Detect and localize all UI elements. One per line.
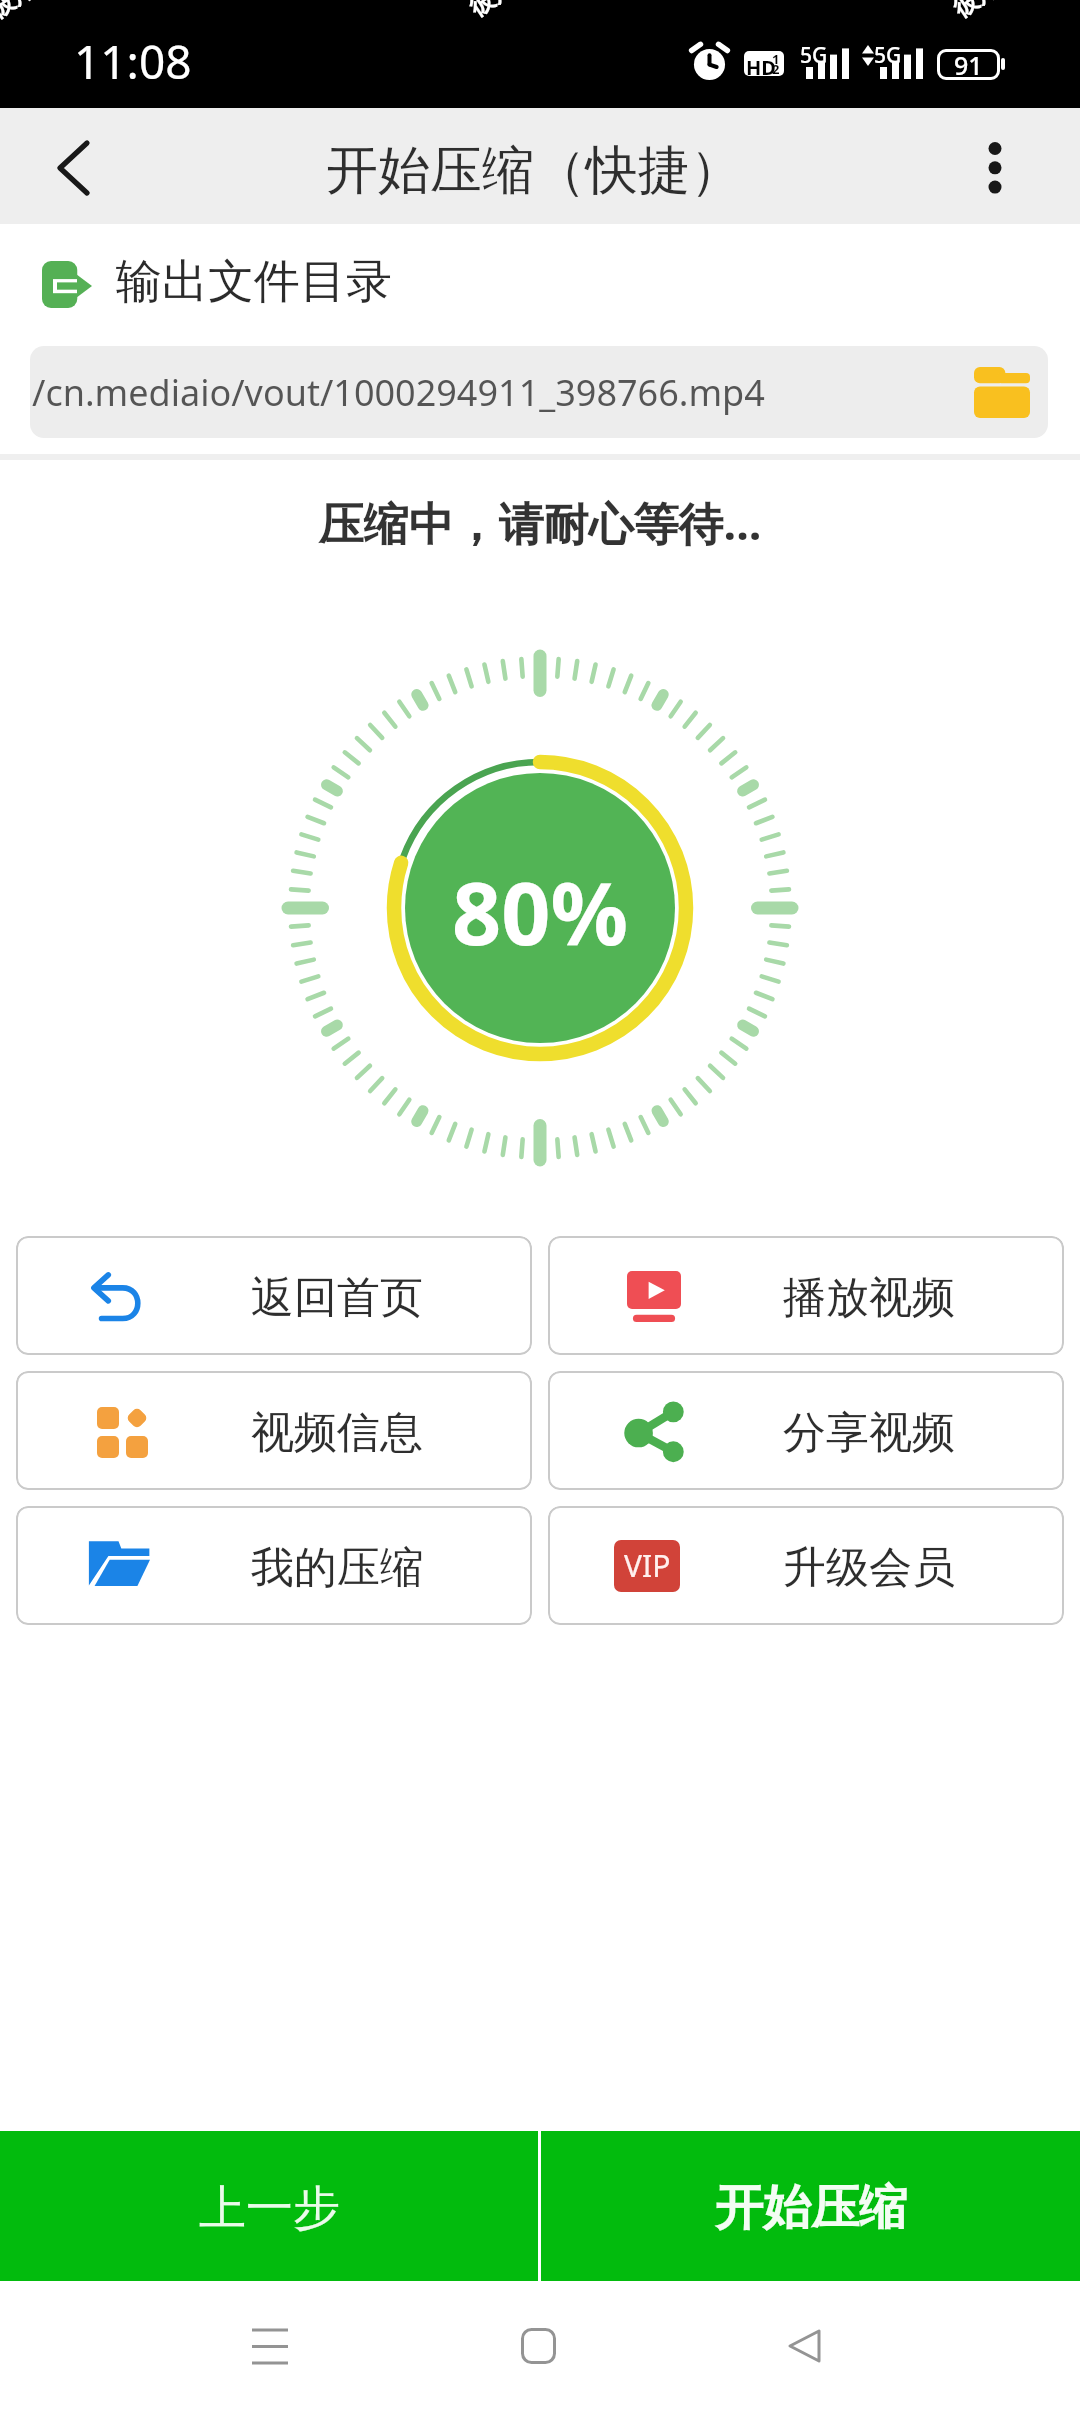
button[interactable]: 播放视频: [548, 1236, 1064, 1355]
button[interactable]: More options: [950, 108, 1080, 224]
button[interactable]: Back: [714, 2291, 894, 2401]
staticText: 5G: [800, 41, 828, 70]
staticText: 彼岸: [0, 0, 40, 25]
staticText: 输出文件目录: [116, 253, 392, 311]
staticText: 5G: [874, 41, 902, 70]
staticText: HD: [746, 54, 776, 76]
button[interactable]: VIP: [548, 1506, 1064, 1625]
staticText: 视频信息: [251, 1406, 423, 1460]
button[interactable]: 上一步: [0, 2131, 538, 2281]
button[interactable]: 视频信息: [16, 1371, 532, 1490]
staticText: 彼岸: [464, 0, 520, 23]
staticText: 91: [954, 48, 983, 79]
button[interactable]: Back: [0, 108, 150, 224]
staticText: 彼岸: [948, 0, 1004, 24]
staticText: 上一步: [199, 2179, 340, 2238]
button[interactable]: 开始压缩: [541, 2131, 1080, 2281]
button[interactable]: Choose output folder: [955, 346, 1048, 438]
staticText: VIP: [624, 1545, 671, 1586]
staticText: 播放视频: [783, 1271, 955, 1325]
button[interactable]: 我的压缩: [16, 1506, 532, 1625]
staticText: 1: [772, 51, 780, 68]
button[interactable]: 返回首页: [16, 1236, 532, 1355]
staticText: 我的压缩: [251, 1541, 423, 1595]
staticText: 开始压缩（快捷）: [326, 138, 742, 204]
staticText: 分享视频: [783, 1406, 955, 1460]
staticText: 开始压缩: [715, 2178, 907, 2238]
staticText: 升级会员: [783, 1541, 955, 1595]
button[interactable]: 分享视频: [548, 1371, 1064, 1490]
staticText: 80%: [452, 853, 628, 970]
staticText: 11:08: [74, 30, 192, 93]
button[interactable]: Menu: [180, 2291, 360, 2401]
staticText: 2: [772, 60, 780, 76]
staticText: /cn.mediaio/vout/1000294911_398766.mp4: [32, 368, 765, 417]
staticText: 返回首页: [251, 1271, 423, 1325]
button[interactable]: Recents: [448, 2291, 628, 2401]
button[interactable]: /cn.mediaio/vout/1000294911_398766.mp4: [30, 346, 1048, 438]
staticText: 压缩中，请耐心等待...: [0, 492, 1080, 553]
